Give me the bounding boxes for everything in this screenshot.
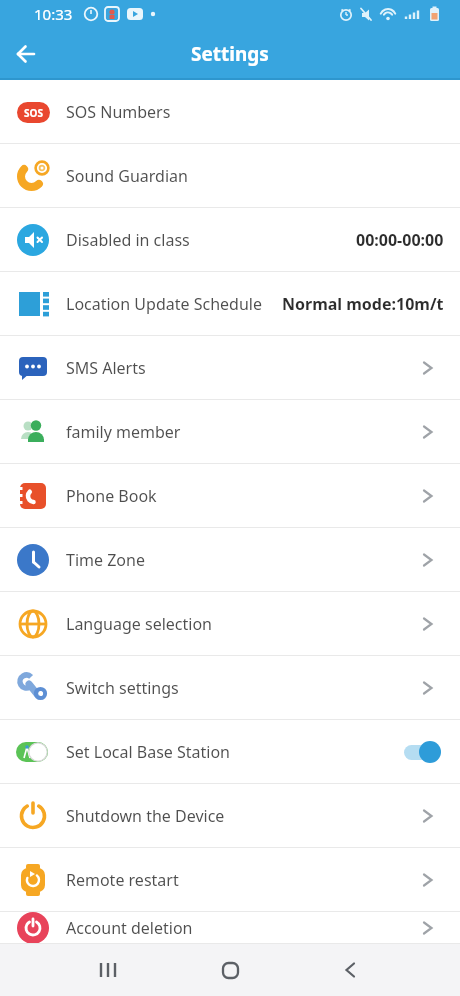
staticText: SOS Numbers [66, 101, 171, 123]
staticText: Account deletion [66, 917, 193, 939]
staticText: Phone Book [66, 485, 157, 507]
button[interactable]: Shutdown the Device [0, 784, 460, 848]
button[interactable]: Phone Book [0, 464, 460, 528]
button[interactable]: Remote restart [0, 848, 460, 912]
button[interactable]: Switch settings [0, 656, 460, 720]
button[interactable]: SMS Alerts [0, 336, 460, 400]
staticText: family member [66, 421, 181, 443]
button[interactable] [6, 34, 46, 74]
staticText: Time Zone [66, 549, 145, 571]
staticText: Location Update Schedule [66, 293, 262, 315]
staticText: 00:00-00:00 [356, 229, 444, 251]
button[interactable] [170, 944, 290, 996]
button[interactable]: family member [0, 400, 460, 464]
button[interactable]: Set Local Base Station [0, 720, 460, 784]
button[interactable]: Language selection [0, 592, 460, 656]
staticText: Shutdown the Device [66, 805, 225, 827]
staticText: Sound Guardian [66, 165, 188, 187]
staticText: Set Local Base Station [66, 741, 230, 763]
button[interactable]: SOS [0, 80, 460, 144]
staticText: Disabled in class [66, 229, 190, 251]
button[interactable]: Sound Guardian [0, 144, 460, 208]
staticText: Switch settings [66, 677, 179, 699]
staticText: Remote restart [66, 869, 179, 891]
button[interactable] [48, 944, 168, 996]
button[interactable] [404, 739, 444, 765]
button[interactable]: Account deletion [0, 912, 460, 944]
staticText: SOS [24, 106, 43, 120]
button[interactable]: Disabled in class [0, 208, 460, 272]
staticText: Settings [191, 41, 269, 67]
staticText: Normal mode:10m/t [282, 293, 444, 315]
staticText: 10:33 [34, 4, 73, 24]
button[interactable]: Location Update Schedule [0, 272, 460, 336]
staticText: SMS Alerts [66, 357, 146, 379]
button[interactable]: Time Zone [0, 528, 460, 592]
button[interactable] [290, 944, 410, 996]
staticText: Language selection [66, 613, 212, 635]
